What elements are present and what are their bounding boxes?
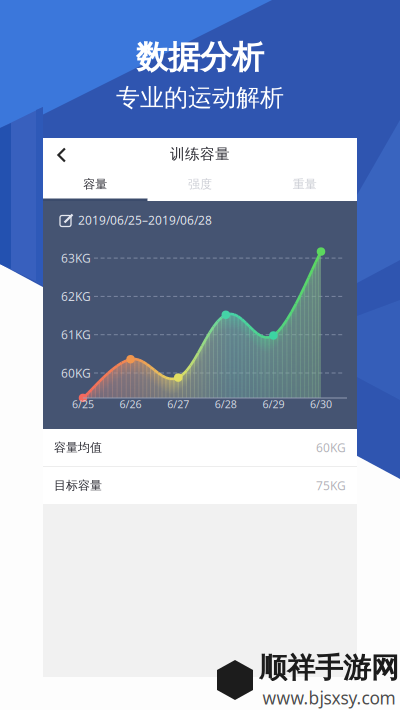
button[interactable]: 目标容量 [43, 467, 357, 504]
button[interactable]: 容量均值 [43, 429, 357, 466]
staticText: 6/25 [72, 397, 94, 411]
staticText: 2019/06/25–2019/06/28 [78, 212, 212, 228]
button[interactable]: 重量 [252, 170, 357, 198]
staticText: 6/30 [310, 397, 332, 411]
staticText: www.bjsxsy.com [262, 686, 395, 709]
staticText: 强度 [188, 177, 212, 192]
staticText: 训练容量 [170, 145, 230, 163]
button[interactable]: 强度 [148, 170, 252, 198]
staticText: 6/29 [262, 397, 284, 411]
staticText: 容量 [83, 177, 107, 192]
staticText: 60KG [61, 365, 91, 381]
staticText: 6/26 [120, 397, 142, 411]
staticText: 目标容量 [54, 478, 102, 493]
button[interactable]: 容量 [43, 170, 148, 198]
staticText: 61KG [61, 327, 91, 343]
staticText: 专业的运动解析 [116, 83, 284, 112]
staticText: 62KG [61, 288, 91, 304]
staticText: 6/27 [167, 397, 189, 411]
staticText: 75KG [316, 477, 346, 493]
staticText: 顺祥手游网 [259, 651, 399, 685]
staticText: 容量均值 [54, 440, 102, 455]
staticText: 60KG [316, 439, 346, 455]
staticText: 6/28 [215, 397, 237, 411]
staticText: 重量 [293, 177, 317, 192]
staticText: 数据分析 [136, 38, 264, 77]
staticText: 63KG [61, 250, 91, 266]
button[interactable]: Back [43, 138, 78, 170]
